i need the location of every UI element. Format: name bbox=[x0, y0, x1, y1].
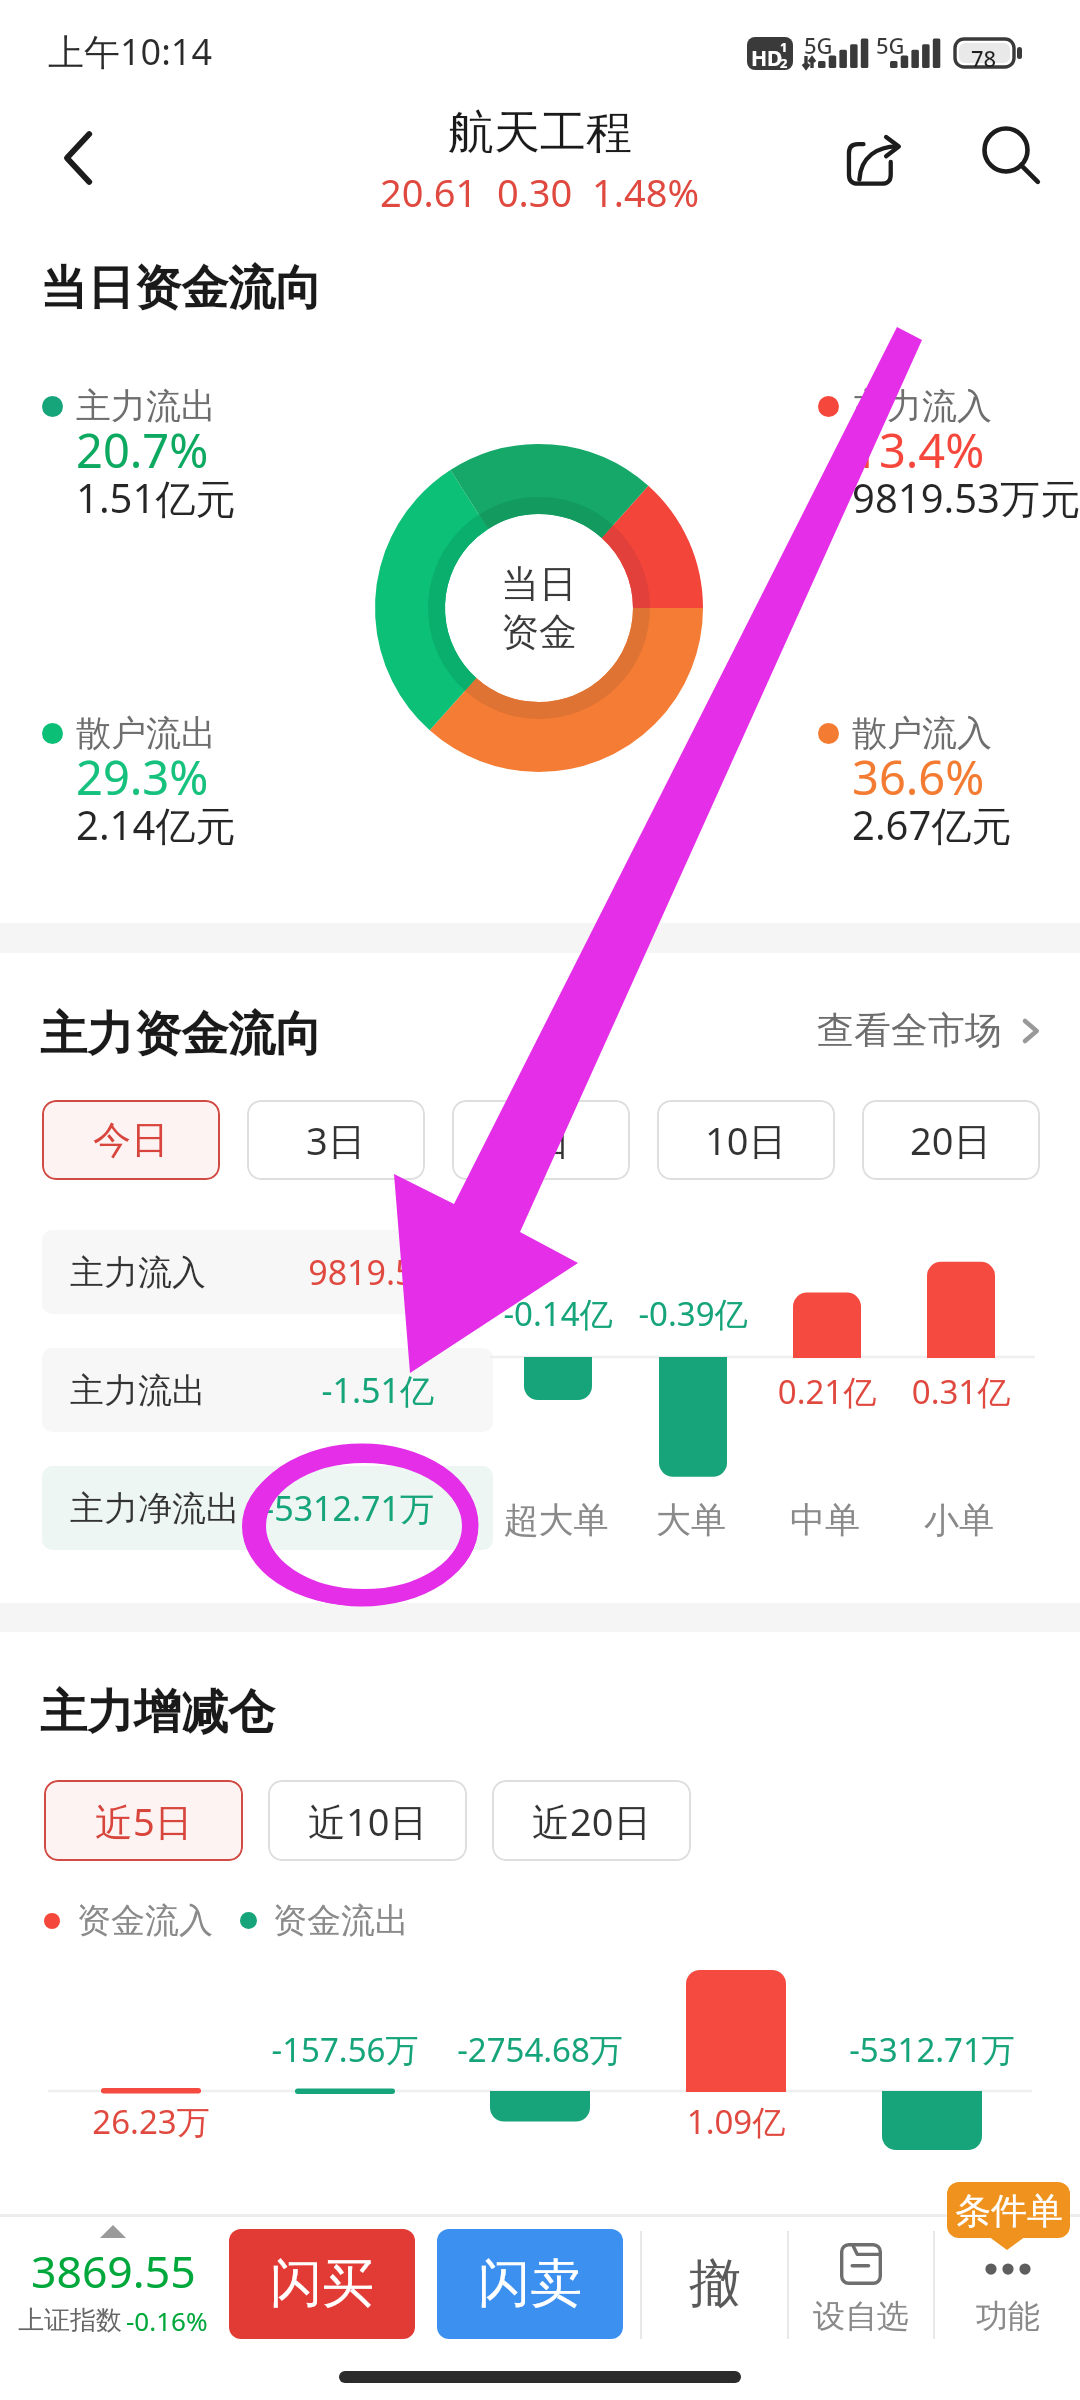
staticText: 资金 bbox=[501, 608, 577, 656]
button[interactable]: 近10日 bbox=[268, 1780, 467, 1861]
button[interactable]: 3869.55 bbox=[0, 2225, 226, 2338]
staticText: 撤 bbox=[689, 2251, 741, 2317]
staticText: 29.3% bbox=[76, 745, 209, 809]
staticText: 5G bbox=[876, 30, 905, 60]
staticText: 1.09亿 bbox=[616, 2099, 856, 2144]
staticText: -1.51亿 bbox=[321, 1367, 434, 1413]
staticText: 当日资金流向 bbox=[40, 259, 322, 318]
staticText: 20日 bbox=[910, 1114, 992, 1166]
button[interactable]: 5日 bbox=[452, 1100, 630, 1180]
button[interactable]: 近5日 bbox=[44, 1780, 243, 1861]
staticText: 主力增减仓 bbox=[40, 1683, 275, 1742]
staticText: 主力流出 bbox=[76, 384, 216, 428]
button[interactable]: 主力净流出 bbox=[42, 1466, 493, 1550]
staticText: 超大单 bbox=[466, 1498, 646, 1542]
staticText: 2 bbox=[780, 54, 788, 70]
staticText: 散户流出 bbox=[76, 711, 216, 755]
button[interactable]: 近20日 bbox=[492, 1780, 691, 1861]
button[interactable]: 主力流入 bbox=[42, 1230, 493, 1314]
staticText: -0.39亿 bbox=[603, 1291, 783, 1336]
staticText: -2754.68万 bbox=[420, 2027, 660, 2072]
staticText: 20.61 0.30 1.48% bbox=[380, 166, 700, 218]
staticText: 主力流入 bbox=[852, 384, 992, 428]
button[interactable]: 查看全市场 bbox=[817, 1007, 1044, 1054]
button[interactable]: 撤 bbox=[643, 2228, 786, 2340]
staticText: 上午10:14 bbox=[48, 27, 213, 76]
button[interactable]: 闪卖 bbox=[437, 2229, 623, 2339]
staticText: 2.14亿元 bbox=[76, 797, 236, 852]
staticText: HD bbox=[751, 44, 783, 70]
button[interactable]: 10日 bbox=[657, 1100, 835, 1180]
button[interactable]: Back bbox=[12, 98, 142, 218]
staticText: 0.31亿 bbox=[871, 1369, 1051, 1414]
button[interactable]: 闪买 bbox=[229, 2229, 415, 2339]
staticText: 大单 bbox=[601, 1498, 781, 1542]
staticText: -157.56万 bbox=[225, 2027, 465, 2072]
button[interactable]: 今日 bbox=[42, 1100, 220, 1180]
staticText: 小单 bbox=[869, 1498, 1049, 1542]
button[interactable]: Share bbox=[806, 105, 936, 225]
staticText: 设自选 bbox=[813, 2296, 909, 2336]
staticText: 今日 bbox=[93, 1116, 169, 1164]
staticText: 主力流出 bbox=[70, 1369, 240, 1412]
button[interactable]: 3日 bbox=[247, 1100, 425, 1180]
staticText: 查看全市场 bbox=[817, 1007, 1002, 1054]
staticText: 78 bbox=[971, 43, 997, 73]
staticText: 中单 bbox=[735, 1498, 915, 1542]
staticText: 10日 bbox=[705, 1114, 787, 1166]
staticText: -5312.71万 bbox=[263, 1485, 434, 1531]
staticText: 近5日 bbox=[95, 1795, 193, 1847]
staticText: 主力资金流向 bbox=[40, 1005, 322, 1064]
staticText: 近10日 bbox=[308, 1795, 428, 1847]
staticText: 资金流入 bbox=[77, 1899, 213, 1942]
staticText: 条件单 bbox=[955, 2188, 1063, 2233]
staticText: 20.7% bbox=[76, 418, 209, 482]
staticText: 航天工程 bbox=[448, 104, 632, 162]
staticText: 2.67亿元 bbox=[852, 797, 1012, 852]
staticText: 9819.52 bbox=[308, 1249, 434, 1295]
staticText: 13.4% bbox=[852, 418, 985, 482]
staticText: 5G bbox=[804, 30, 833, 60]
staticText: -0.16% bbox=[126, 2303, 208, 2338]
staticText: 当日 bbox=[501, 560, 577, 608]
button[interactable]: 功能 bbox=[935, 2243, 1080, 2336]
staticText: 3869.55 bbox=[31, 2240, 196, 2301]
button[interactable]: 20日 bbox=[862, 1100, 1040, 1180]
staticText: -5312.71万 bbox=[812, 2027, 1052, 2072]
staticText: 3日 bbox=[306, 1114, 366, 1166]
staticText: 散户流入 bbox=[852, 711, 992, 755]
staticText: 闪卖 bbox=[478, 2251, 582, 2317]
staticText: 闪买 bbox=[270, 2251, 374, 2317]
staticText: -0.14亿 bbox=[468, 1291, 648, 1336]
button[interactable]: 主力流出 bbox=[42, 1348, 493, 1432]
button[interactable]: Search bbox=[942, 98, 1072, 218]
staticText: 0.21亿 bbox=[737, 1369, 917, 1414]
staticText: 36.6% bbox=[852, 745, 985, 809]
button[interactable]: 设自选 bbox=[789, 2243, 933, 2336]
staticText: 5日 bbox=[511, 1114, 571, 1166]
staticText: 9819.53万元 bbox=[852, 470, 1080, 525]
staticText: 上证指数 bbox=[18, 2304, 122, 2337]
staticText: 1.51亿元 bbox=[76, 470, 236, 525]
staticText: 近20日 bbox=[532, 1795, 652, 1847]
staticText: 主力净流出 bbox=[70, 1487, 240, 1530]
staticText: 26.23万 bbox=[31, 2099, 271, 2144]
staticText: 主力流入 bbox=[70, 1251, 240, 1294]
staticText: 功能 bbox=[976, 2296, 1040, 2336]
staticText: 1 bbox=[780, 38, 788, 56]
staticText: 资金流出 bbox=[273, 1899, 409, 1942]
